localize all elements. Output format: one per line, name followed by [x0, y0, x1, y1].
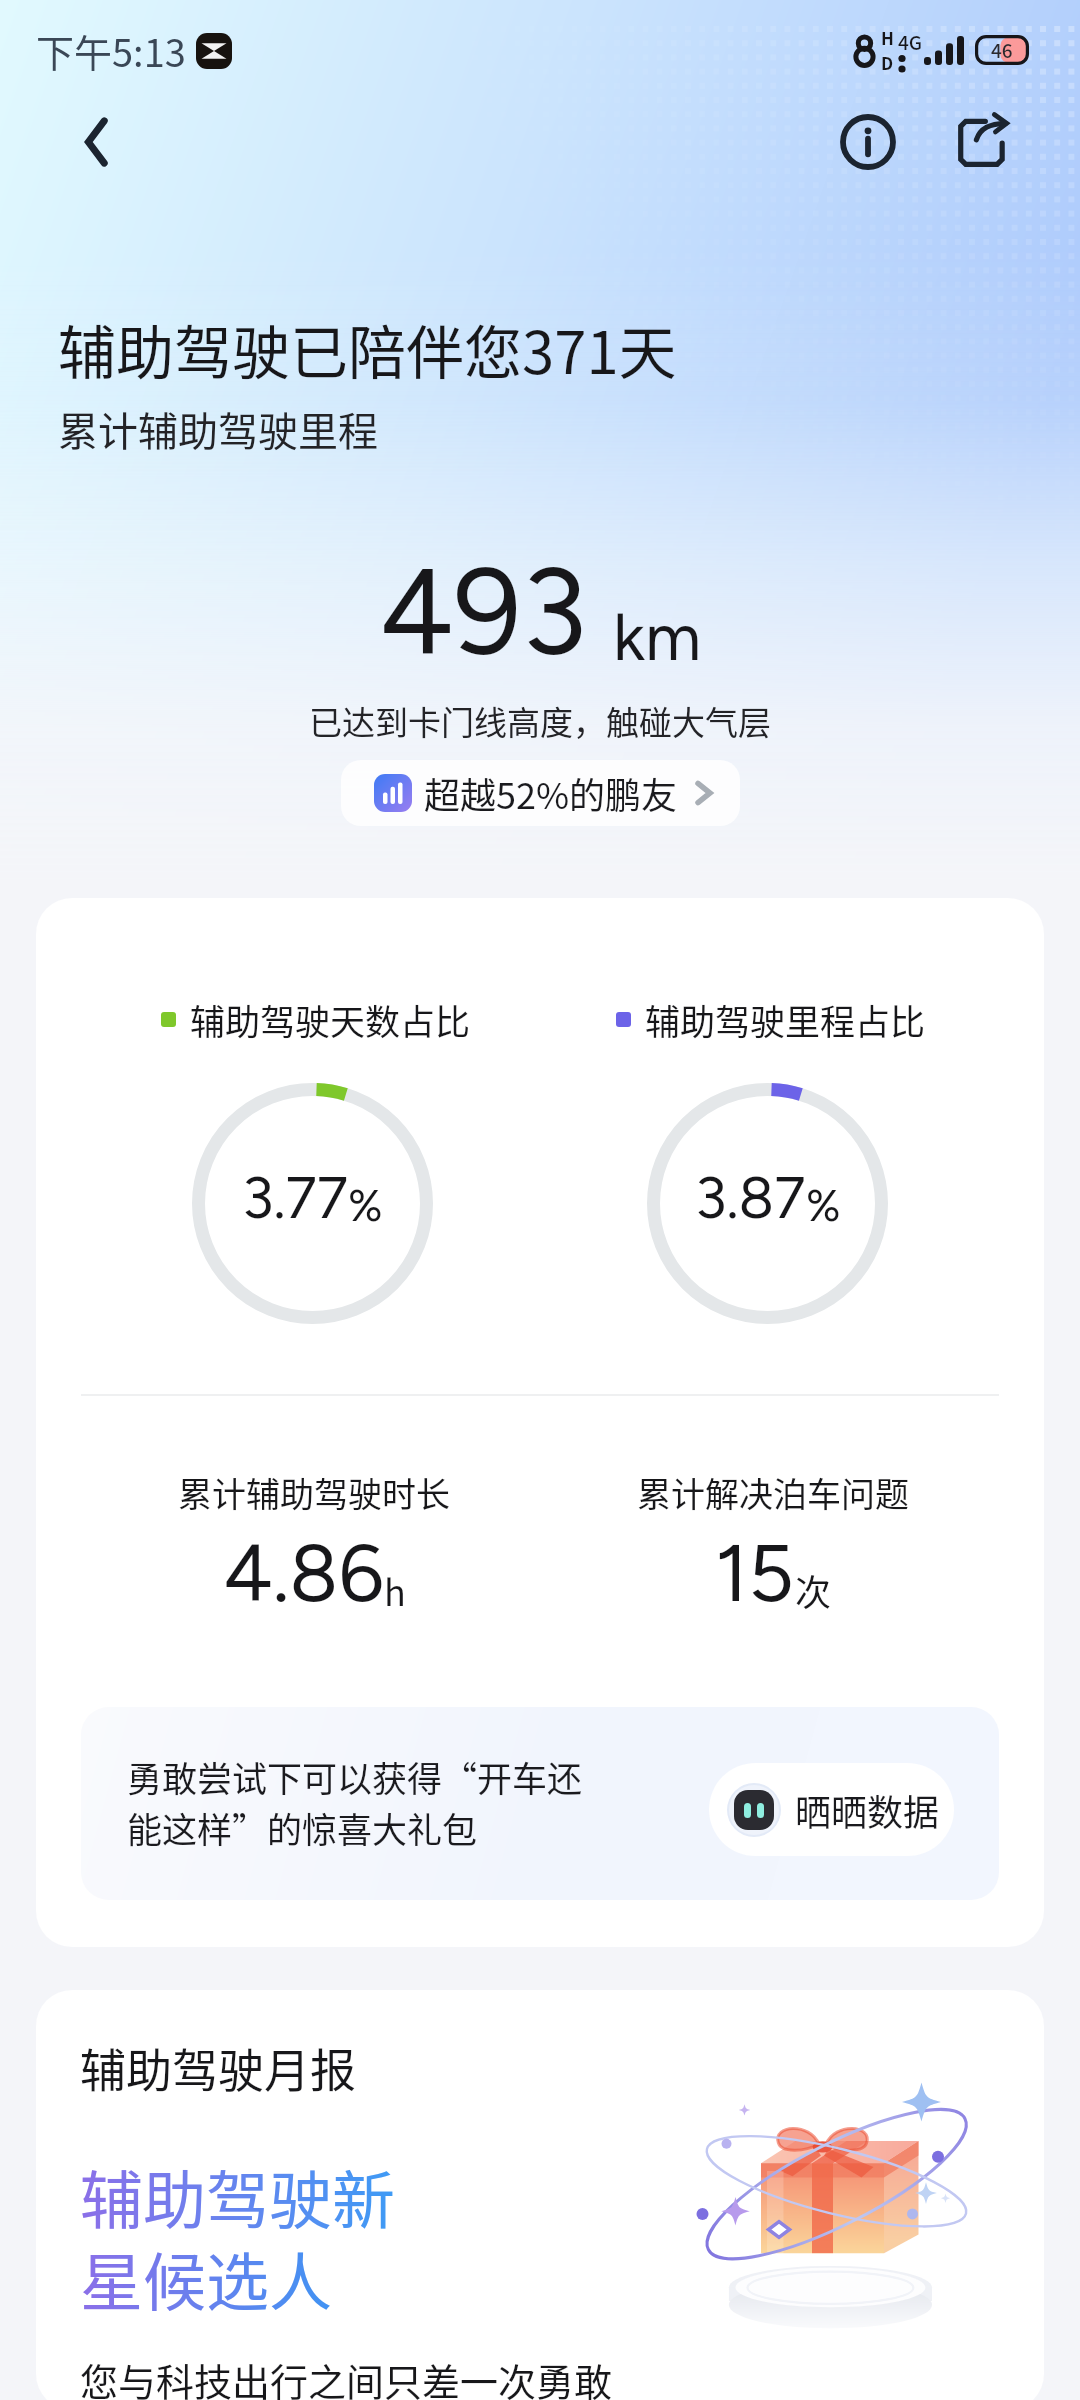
staticText: 辅助驾驶里程占比: [645, 994, 926, 1045]
staticText: 辅助驾驶新: [80, 2150, 395, 2241]
button[interactable]: Back: [58, 102, 138, 182]
staticText: 4G: [898, 28, 923, 56]
staticText: 已达到卡门线高度，触碰大气层: [309, 697, 771, 745]
staticText: 辅助驾驶天数占比: [190, 994, 471, 1045]
staticText: 次: [795, 1564, 832, 1616]
staticText: 15: [715, 1525, 795, 1621]
staticText: 辅助驾驶已陪伴您371天: [58, 307, 677, 391]
staticText: 累计解决泊车问题: [637, 1468, 909, 1517]
staticText: 4.86: [223, 1525, 384, 1621]
staticText: 3.87: [695, 1163, 806, 1233]
button[interactable]: Share: [942, 102, 1022, 182]
staticText: 下午5:13: [36, 23, 186, 78]
button[interactable]: 晒晒数据: [709, 1763, 954, 1856]
staticText: %: [348, 1179, 383, 1232]
staticText: 晒晒数据: [795, 1784, 940, 1836]
staticText: 493: [379, 540, 587, 684]
staticText: 勇敢尝试下可以获得“开车还: [127, 1751, 583, 1802]
button[interactable]: 超越52%的鹏友: [341, 760, 740, 826]
staticText: 能这样”的惊喜大礼包: [127, 1802, 478, 1853]
button[interactable]: Info: [828, 102, 908, 182]
button[interactable]: 辅助驾驶月报: [36, 1990, 1044, 2400]
staticText: 3.77: [242, 1163, 348, 1233]
staticText: D: [881, 50, 894, 75]
staticText: km: [613, 597, 702, 676]
staticText: H: [881, 25, 894, 50]
staticText: 超越52%的鹏友: [424, 767, 678, 819]
staticText: 您与科技出行之间只差一次勇敢: [80, 2352, 613, 2400]
staticText: 46: [991, 36, 1013, 64]
staticText: 累计辅助驾驶时长: [178, 1468, 450, 1517]
staticText: h: [384, 1564, 406, 1616]
button[interactable]: 勇敢尝试下可以获得“开车还: [81, 1707, 999, 1900]
staticText: %: [806, 1179, 841, 1232]
staticText: 辅助驾驶月报: [80, 2034, 356, 2101]
staticText: 累计辅助驾驶里程: [58, 400, 378, 458]
staticText: 星候选人: [80, 2232, 332, 2323]
